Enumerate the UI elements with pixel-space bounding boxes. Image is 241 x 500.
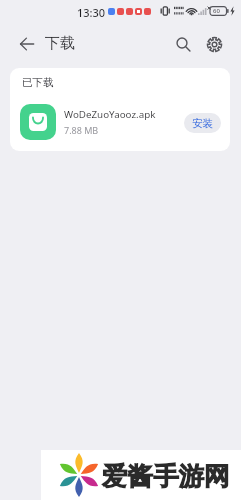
button[interactable]: Settings xyxy=(200,30,228,58)
staticText: 7.88 MB xyxy=(64,124,99,136)
staticText: 已下载 xyxy=(22,76,54,89)
staticText: 爱酱手游网 xyxy=(102,460,230,492)
staticText: 13:30 xyxy=(77,5,106,20)
staticText: WoDeZuoYaooz.apk xyxy=(64,108,156,121)
button[interactable]: 安装 xyxy=(184,113,221,133)
button[interactable]: WoDeZuoYaooz.apk xyxy=(10,98,230,146)
button[interactable]: Search xyxy=(169,30,197,58)
staticText: 下载 xyxy=(45,34,75,53)
button[interactable]: Back xyxy=(13,30,41,58)
staticText: 安装 xyxy=(192,117,213,130)
staticText: 60 xyxy=(213,7,220,15)
